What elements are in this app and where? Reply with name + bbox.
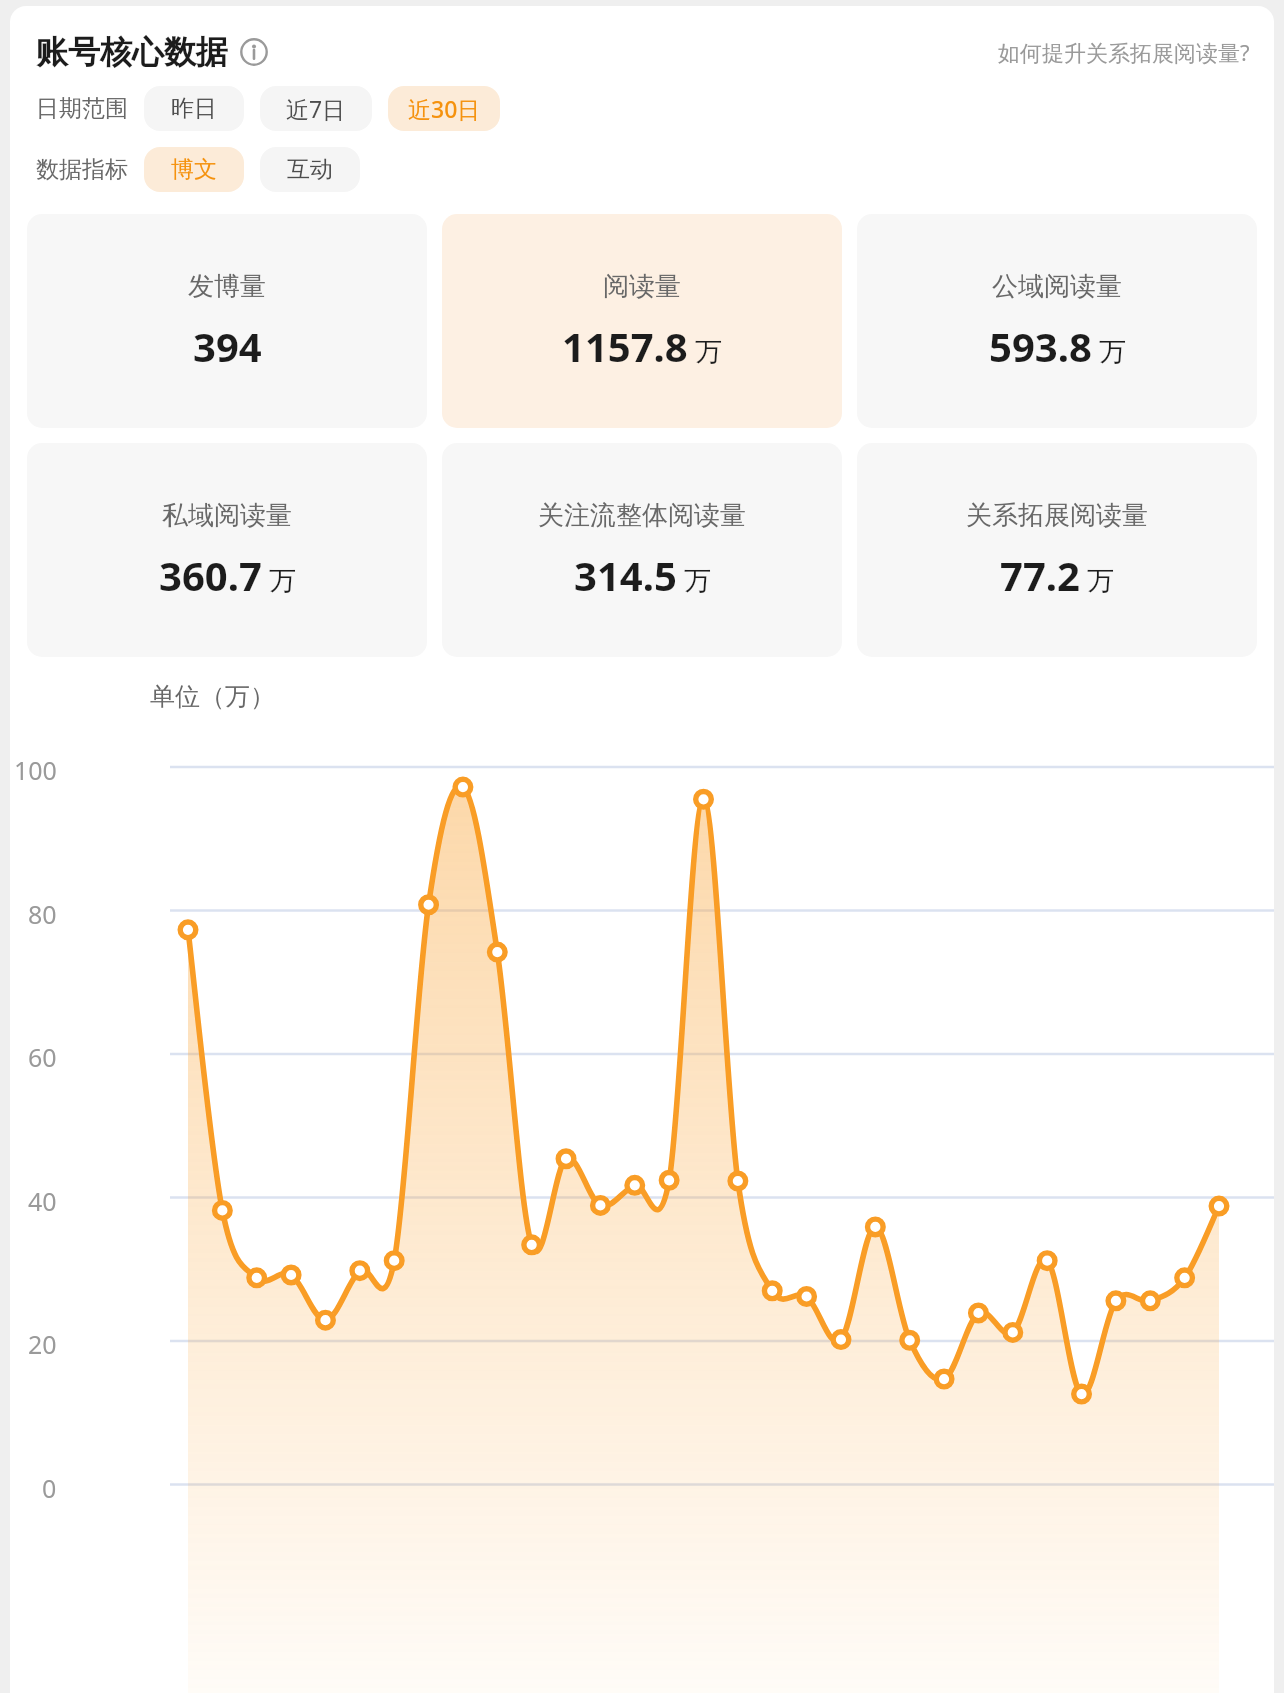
staticText: 博文	[171, 155, 217, 184]
staticText: 发博量	[188, 270, 266, 303]
staticText: 360.7	[159, 548, 262, 602]
button[interactable]: 发博量	[27, 214, 427, 428]
staticText: 40	[28, 1184, 57, 1218]
staticText: 近30日	[408, 93, 481, 124]
staticText: 80	[28, 897, 57, 931]
button[interactable]: 近7日	[260, 86, 372, 131]
staticText: 万	[269, 564, 296, 598]
staticText: 1157.8	[562, 319, 688, 373]
button[interactable]: 昨日	[144, 86, 244, 131]
staticText: 阅读量	[603, 270, 681, 303]
staticText: 20	[28, 1327, 57, 1361]
staticText: 593.8	[989, 319, 1092, 373]
staticText: 万	[684, 564, 711, 598]
staticText: 关系拓展阅读量	[966, 499, 1148, 532]
button[interactable]: 互动	[260, 147, 360, 192]
button[interactable]: 阅读量	[442, 214, 842, 428]
staticText: 77.2	[1000, 548, 1080, 602]
staticText: 昨日	[171, 94, 217, 123]
button[interactable]: 近30日	[388, 86, 500, 131]
button[interactable]: 公域阅读量	[857, 214, 1257, 428]
staticText: 万	[1099, 335, 1126, 369]
staticText: 万	[1087, 564, 1114, 598]
button[interactable]: 关系拓展阅读量	[857, 443, 1257, 657]
staticText: 0	[42, 1471, 57, 1505]
staticText: 账号核心数据	[36, 32, 228, 72]
staticText: 394	[193, 319, 262, 373]
staticText: 公域阅读量	[992, 270, 1122, 303]
staticText: 100	[14, 753, 57, 787]
staticText: 万	[695, 335, 722, 369]
staticText: 如何提升关系拓展阅读量?	[998, 37, 1250, 67]
button[interactable]: 博文	[144, 147, 244, 192]
staticText: 数据指标	[36, 155, 128, 184]
button[interactable]: 私域阅读量	[27, 443, 427, 657]
staticText: 314.5	[574, 548, 677, 602]
staticText: 关注流整体阅读量	[538, 499, 746, 532]
staticText: 私域阅读量	[162, 499, 292, 532]
staticText: 60	[28, 1040, 57, 1074]
staticText: 近7日	[286, 93, 346, 124]
staticText: 互动	[287, 155, 333, 184]
staticText: 日期范围	[36, 94, 128, 123]
staticText: 单位（万）	[150, 681, 275, 712]
button[interactable]: 数据说明	[238, 36, 270, 68]
button[interactable]: 如何提升关系拓展阅读量?	[998, 37, 1250, 67]
button[interactable]: 关注流整体阅读量	[442, 443, 842, 657]
